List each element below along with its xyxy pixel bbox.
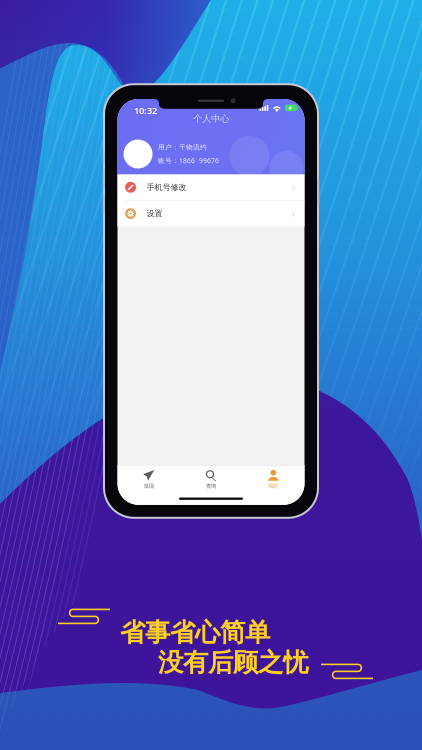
staticText: 省事省心简单 (120, 617, 270, 648)
staticText: 没有后顾之忧 (158, 647, 308, 678)
button[interactable]: 发现 (117, 466, 180, 493)
button[interactable]: 我的 (242, 466, 304, 493)
staticText: 设置 (146, 209, 162, 218)
staticText: 我的 (268, 483, 278, 489)
staticText: 查询 (206, 483, 216, 489)
staticText: 手机号修改 (146, 182, 186, 192)
staticText: 发现 (144, 483, 154, 489)
button[interactable]: 手机号修改 (117, 174, 304, 200)
staticText: 用户：干物流约 (158, 143, 207, 151)
staticText: 账号：1866 99676 (158, 156, 219, 165)
staticText: 10:32 (134, 104, 157, 117)
staticText: 个人中心 (193, 113, 229, 124)
button[interactable]: 查询 (180, 466, 242, 493)
button[interactable]: 设置 (117, 201, 304, 226)
